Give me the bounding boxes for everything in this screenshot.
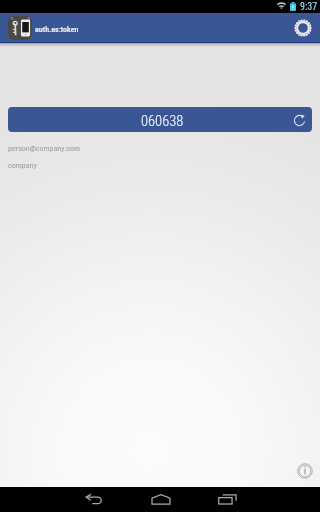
staticText: 060638 — [141, 113, 184, 130]
button[interactable]: Recent apps — [194, 487, 261, 512]
staticText: auth.as:token — [35, 25, 79, 34]
button[interactable]: 060638 — [8, 107, 312, 132]
button[interactable]: Settings — [286, 13, 320, 42]
button[interactable]: About — [296, 462, 314, 480]
staticText: 9:37 — [300, 1, 318, 13]
staticText: person@company.com — [8, 144, 80, 153]
button[interactable]: Home — [127, 487, 194, 512]
button[interactable]: Refresh token — [290, 111, 308, 129]
button[interactable]: Back — [60, 487, 127, 512]
staticText: company — [8, 161, 37, 170]
